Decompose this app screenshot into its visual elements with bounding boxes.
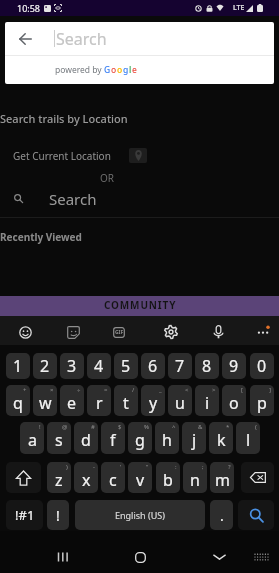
button[interactable]: 0 xyxy=(250,353,274,379)
button[interactable]: COMMUNITY xyxy=(0,296,279,316)
staticText: ^ xyxy=(172,423,176,431)
button[interactable]: ^ xyxy=(155,422,179,454)
staticText: × xyxy=(50,386,54,394)
staticText: m xyxy=(215,469,230,491)
staticText: 1 xyxy=(13,355,23,377)
staticText: i xyxy=(205,392,210,414)
button[interactable]: Stickers xyxy=(62,321,84,343)
button[interactable]: _ xyxy=(141,385,165,416)
button[interactable]: ) xyxy=(47,462,71,493)
button[interactable]: Shift xyxy=(6,462,41,493)
staticText: & xyxy=(198,423,203,431)
button[interactable]: @ xyxy=(47,422,71,454)
button[interactable]: Keyboard settings xyxy=(160,321,182,343)
button[interactable]: Backspace xyxy=(241,462,274,493)
staticText: c xyxy=(109,469,117,491)
button[interactable]: Search xyxy=(238,500,274,530)
staticText: % xyxy=(144,423,149,431)
staticText: o xyxy=(111,64,117,76)
staticText: l xyxy=(246,429,251,451)
button[interactable]: * xyxy=(209,422,233,454)
staticText: b xyxy=(163,469,173,491)
staticText: + xyxy=(23,386,27,394)
button[interactable]: = xyxy=(87,385,111,416)
staticText: o xyxy=(117,64,123,76)
button[interactable]: - xyxy=(74,462,98,493)
button[interactable]: 9 xyxy=(222,353,246,379)
button[interactable]: / xyxy=(114,385,138,416)
button[interactable]: ; xyxy=(183,462,207,493)
staticText: q xyxy=(13,392,23,414)
button[interactable]: % xyxy=(128,422,152,454)
button[interactable]: 1 xyxy=(6,353,30,379)
staticText: z xyxy=(55,469,63,491)
button[interactable]: 8 xyxy=(195,353,219,379)
staticText: 8 xyxy=(202,355,212,377)
staticText: j xyxy=(192,429,197,451)
staticText: G xyxy=(104,64,111,76)
staticText: e xyxy=(67,392,77,414)
button[interactable]: & xyxy=(182,422,206,454)
button[interactable]: Hide keyboard xyxy=(206,544,232,570)
button[interactable]: English (US) xyxy=(75,500,205,530)
button[interactable]: Emoji xyxy=(14,321,36,343)
staticText: o xyxy=(229,392,239,414)
button[interactable]: . xyxy=(210,500,233,530)
button[interactable]: Back xyxy=(5,22,45,55)
button[interactable]: ! xyxy=(47,500,69,530)
button[interactable]: 6 xyxy=(141,353,165,379)
button[interactable]: ' xyxy=(101,462,125,493)
staticText: Get Current Location xyxy=(13,149,111,163)
staticText: 3 xyxy=(67,355,77,377)
staticText: !#1 xyxy=(15,506,35,524)
staticText: n xyxy=(190,469,200,491)
button[interactable]: Get Current Location xyxy=(13,145,147,166)
button[interactable]: Switch keyboard xyxy=(248,544,274,570)
staticText: LTE xyxy=(233,3,245,13)
button[interactable]: < xyxy=(168,385,192,416)
button[interactable]: ! xyxy=(20,422,44,454)
staticText: 5 xyxy=(121,355,131,377)
button[interactable]: # xyxy=(74,422,98,454)
button[interactable]: GIF xyxy=(108,321,130,343)
button[interactable]: 4 xyxy=(87,353,111,379)
button[interactable]: $ xyxy=(101,422,125,454)
staticText: _ xyxy=(159,386,162,394)
button[interactable]: + xyxy=(6,385,30,416)
staticText: Recently Viewed xyxy=(0,230,82,244)
button[interactable]: Voice input xyxy=(207,321,229,343)
staticText: g xyxy=(123,64,129,76)
staticText: > xyxy=(212,386,216,394)
staticText: English (US) xyxy=(115,509,165,521)
staticText: 4 xyxy=(94,355,104,377)
button[interactable]: Search xyxy=(0,183,279,214)
button[interactable]: ÷ xyxy=(60,385,84,416)
staticText: a xyxy=(28,429,37,451)
button[interactable]: 7 xyxy=(168,353,192,379)
button[interactable]: ( xyxy=(236,422,260,454)
staticText: ? xyxy=(228,463,231,471)
button[interactable]: 5 xyxy=(114,353,138,379)
staticText: v xyxy=(136,469,145,491)
staticText: : xyxy=(175,463,177,471)
button[interactable]: [ xyxy=(222,385,246,416)
staticText: $ xyxy=(118,423,122,431)
button[interactable]: × xyxy=(33,385,57,416)
button[interactable]: : xyxy=(156,462,180,493)
staticText: h xyxy=(162,429,172,451)
staticText: < xyxy=(185,386,189,394)
button[interactable]: More options xyxy=(251,321,273,343)
staticText: u xyxy=(175,392,185,414)
button[interactable]: > xyxy=(195,385,219,416)
button[interactable]: Recents xyxy=(49,544,75,570)
staticText: COMMUNITY xyxy=(104,298,177,312)
staticText: ; xyxy=(202,463,204,471)
button[interactable]: Home xyxy=(127,544,153,570)
button[interactable]: " xyxy=(128,462,152,493)
staticText: " xyxy=(146,463,149,471)
button[interactable]: !#1 xyxy=(6,500,43,530)
button[interactable]: ] xyxy=(250,385,274,416)
button[interactable]: 3 xyxy=(60,353,84,379)
button[interactable]: ? xyxy=(210,462,234,493)
button[interactable]: 2 xyxy=(33,353,57,379)
